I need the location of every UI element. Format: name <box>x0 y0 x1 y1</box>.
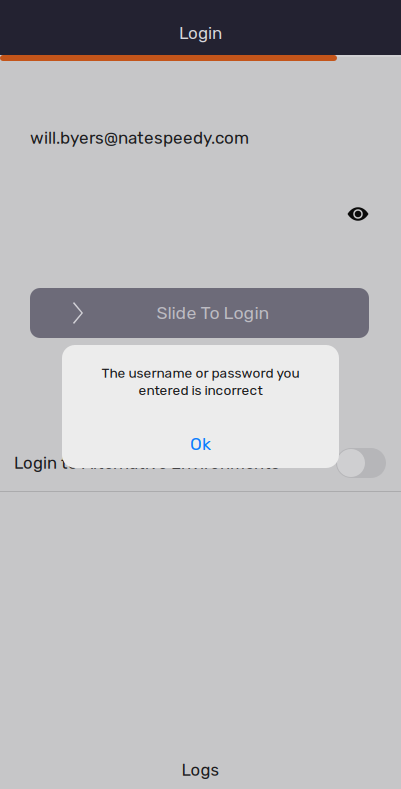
button[interactable]: Ok <box>62 420 339 468</box>
staticText: Logs <box>181 760 219 780</box>
button[interactable]: Show password <box>340 196 376 232</box>
button[interactable]: Slide To Login <box>30 288 369 338</box>
button[interactable]: Logs <box>0 757 401 783</box>
staticText: Login <box>179 23 222 43</box>
staticText: The username or password you <box>101 365 299 381</box>
staticText: Login to Alternative Environments <box>14 453 280 473</box>
button[interactable]: Login to Alternative Environments <box>336 448 386 478</box>
staticText: entered is incorrect <box>138 382 262 398</box>
staticText: Slide To Login <box>156 302 269 323</box>
staticText: will.byers@natespeedy.com <box>30 128 249 148</box>
staticText: Ok <box>190 434 211 454</box>
